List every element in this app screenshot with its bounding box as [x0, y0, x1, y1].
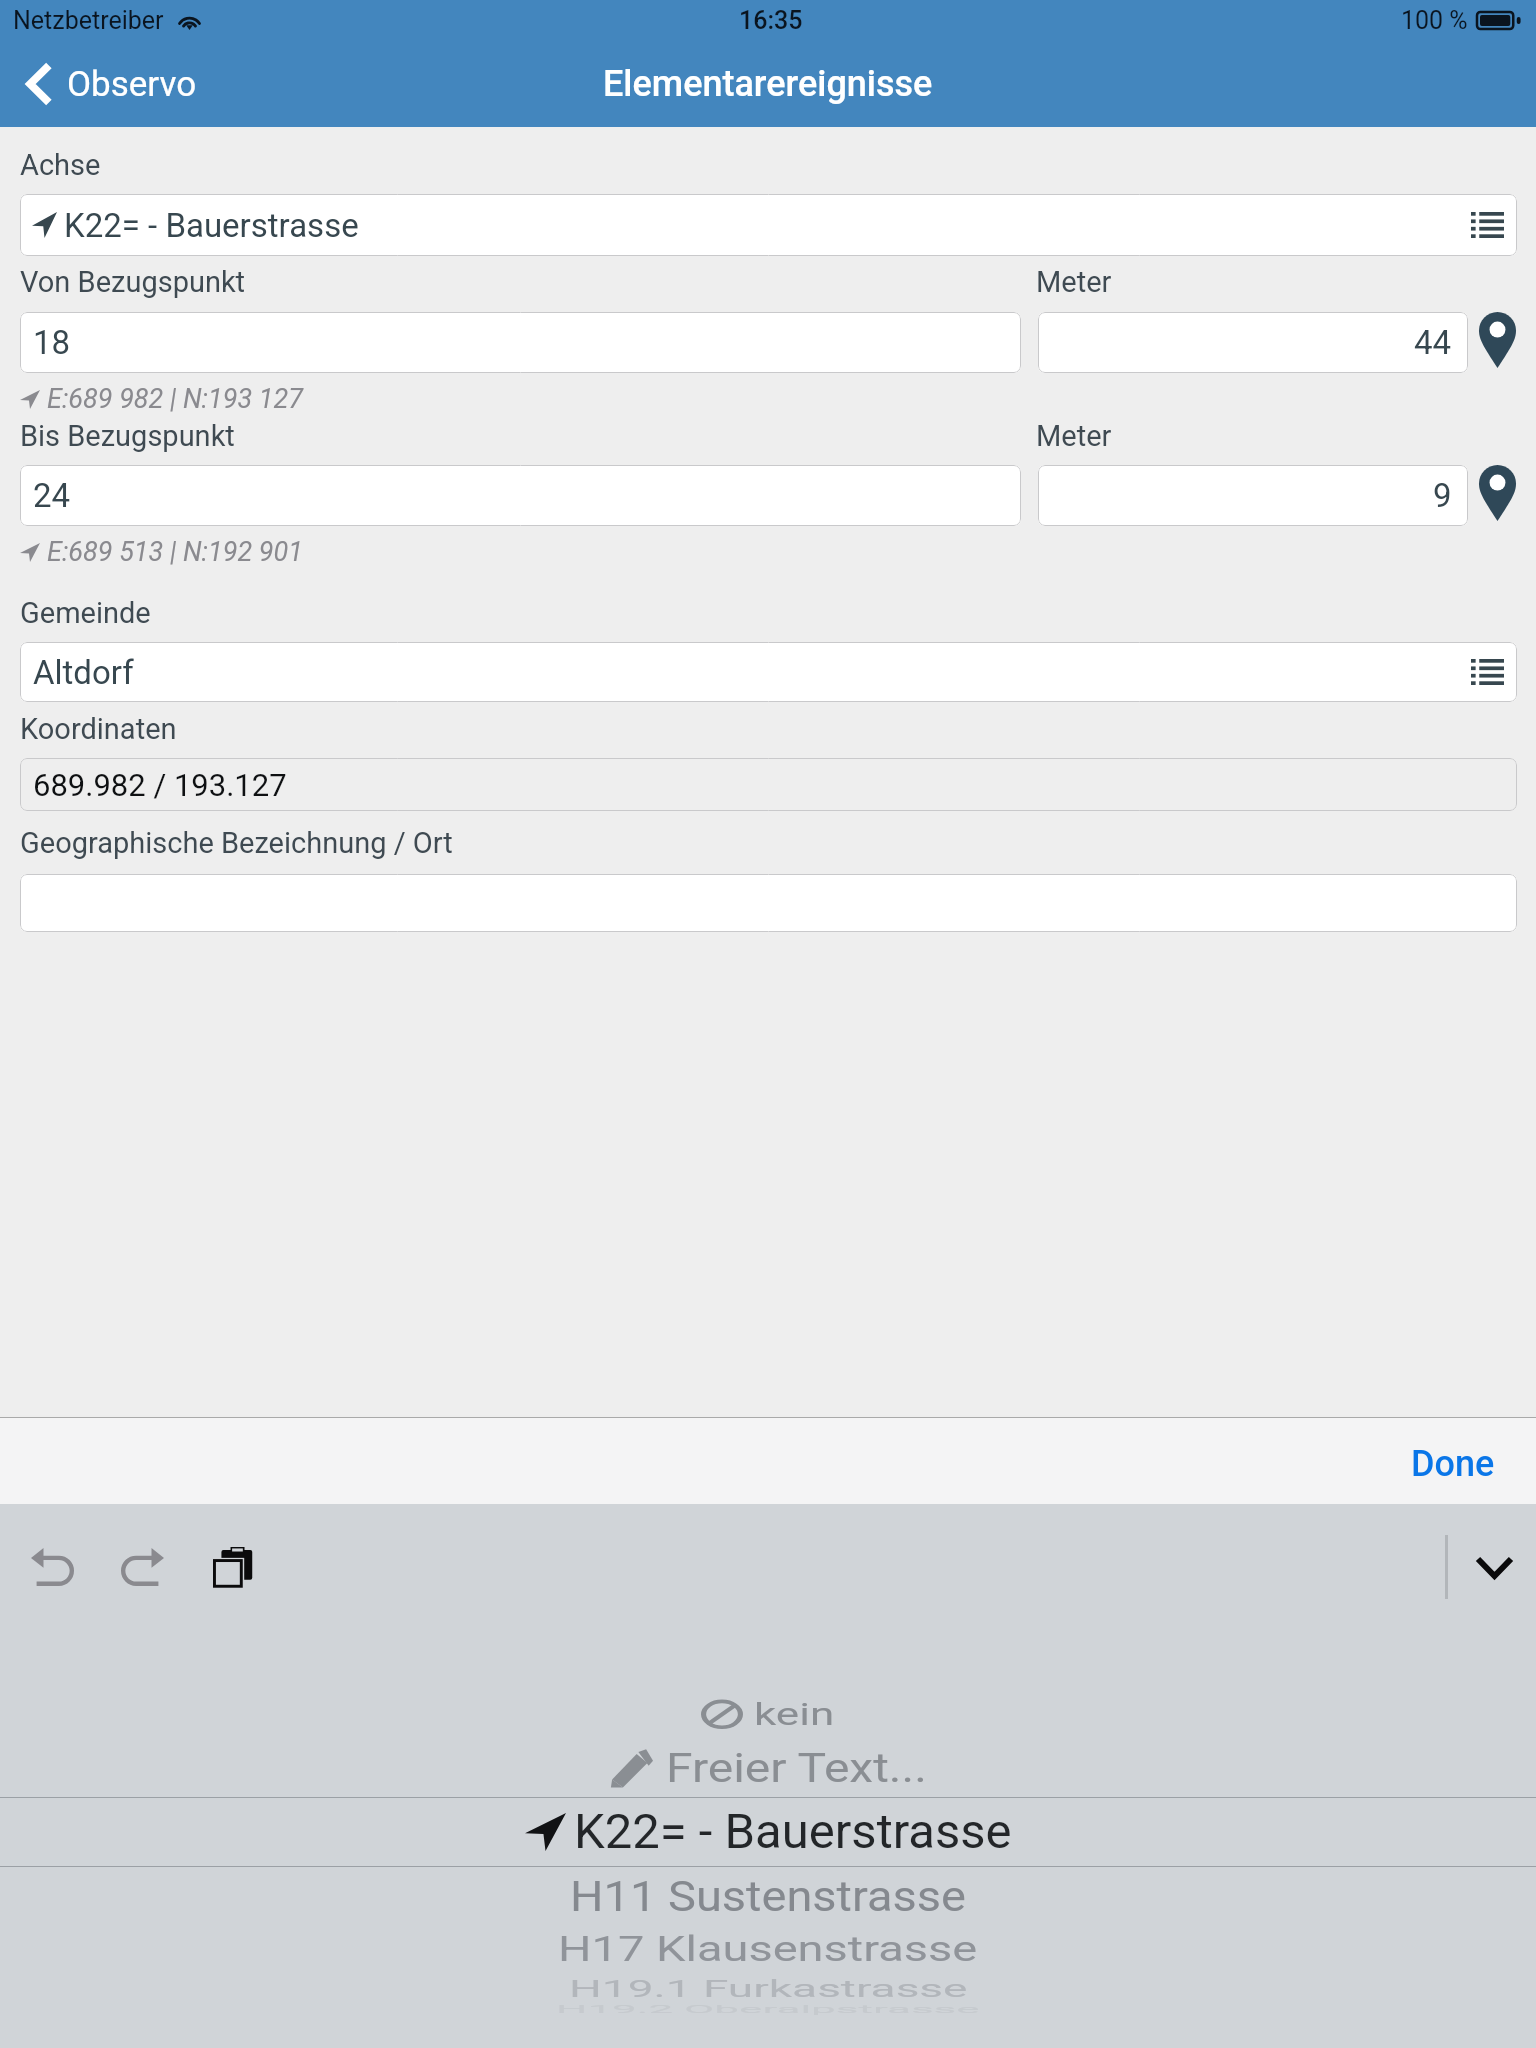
button[interactable]: kein: [0, 1689, 1536, 1738]
button[interactable]: H17 Klausenstrasse: [0, 1923, 1536, 1973]
staticText: Geographische Bezeichnung / Ort: [20, 826, 453, 860]
button[interactable]: 9: [1038, 465, 1468, 526]
staticText: Altdorf: [33, 653, 134, 692]
staticText: Meter: [1036, 265, 1112, 299]
button[interactable]: K22= - Bauerstrasse: [20, 194, 1517, 256]
button[interactable]: [20, 874, 1517, 932]
button[interactable]: Undo: [19, 1534, 85, 1600]
staticText: K22= - Bauerstrasse: [64, 206, 359, 245]
staticText: Bis Bezugspunkt: [20, 419, 235, 453]
staticText: Elementarereignisse: [603, 63, 933, 105]
button[interactable]: Einfügen: [199, 1534, 265, 1600]
button[interactable]: 44: [1038, 312, 1468, 373]
staticText: Observo: [67, 64, 197, 105]
button[interactable]: H19.1 Furkastrasse: [0, 1972, 1536, 2006]
staticText: Freier Text...: [666, 1744, 927, 1792]
button[interactable]: Karte: [1479, 312, 1516, 368]
staticText: Koordinaten: [20, 712, 177, 746]
button[interactable]: Observo: [0, 55, 213, 113]
staticText: E:689 982 | N:193 127: [47, 383, 303, 415]
button[interactable]: Karte: [1479, 465, 1516, 521]
button[interactable]: H11 Sustenstrasse: [0, 1864, 1536, 1926]
staticText: H11 Sustenstrasse: [570, 1870, 966, 1921]
staticText: 100 %: [1401, 6, 1468, 35]
staticText: 689.982 / 193.127: [33, 767, 287, 803]
staticText: 9: [1433, 476, 1452, 515]
staticText: Netzbetreiber: [13, 6, 164, 35]
button[interactable]: Altdorf: [20, 642, 1517, 702]
staticText: 44: [1414, 323, 1452, 362]
button[interactable]: Tastatur schliessen: [1461, 1534, 1527, 1600]
button[interactable]: Freier Text...: [0, 1739, 1536, 1797]
button[interactable]: 18: [20, 312, 1021, 373]
button[interactable]: Redo: [109, 1534, 175, 1600]
staticText: 24: [33, 476, 71, 515]
staticText: Gemeinde: [20, 596, 151, 630]
staticText: kein: [754, 1695, 835, 1733]
staticText: H17 Klausenstrasse: [558, 1928, 978, 1969]
button[interactable]: 24: [20, 465, 1021, 526]
staticText: Meter: [1036, 419, 1112, 453]
button[interactable]: K22= - Bauerstrasse: [0, 1797, 1536, 1865]
staticText: 16:35: [739, 6, 803, 35]
staticText: Achse: [20, 148, 101, 182]
staticText: K22= - Bauerstrasse: [574, 1803, 1012, 1860]
staticText: E:689 513 | N:192 901: [47, 536, 303, 568]
staticText: 18: [33, 323, 71, 362]
staticText: Done: [1411, 1443, 1495, 1485]
staticText: Von Bezugspunkt: [20, 265, 246, 299]
staticText: H19.1 Furkastrasse: [569, 1975, 968, 2003]
staticText: H19.2 Oberalpstrasse: [556, 2004, 980, 2016]
button[interactable]: Done: [1371, 1419, 1536, 1503]
